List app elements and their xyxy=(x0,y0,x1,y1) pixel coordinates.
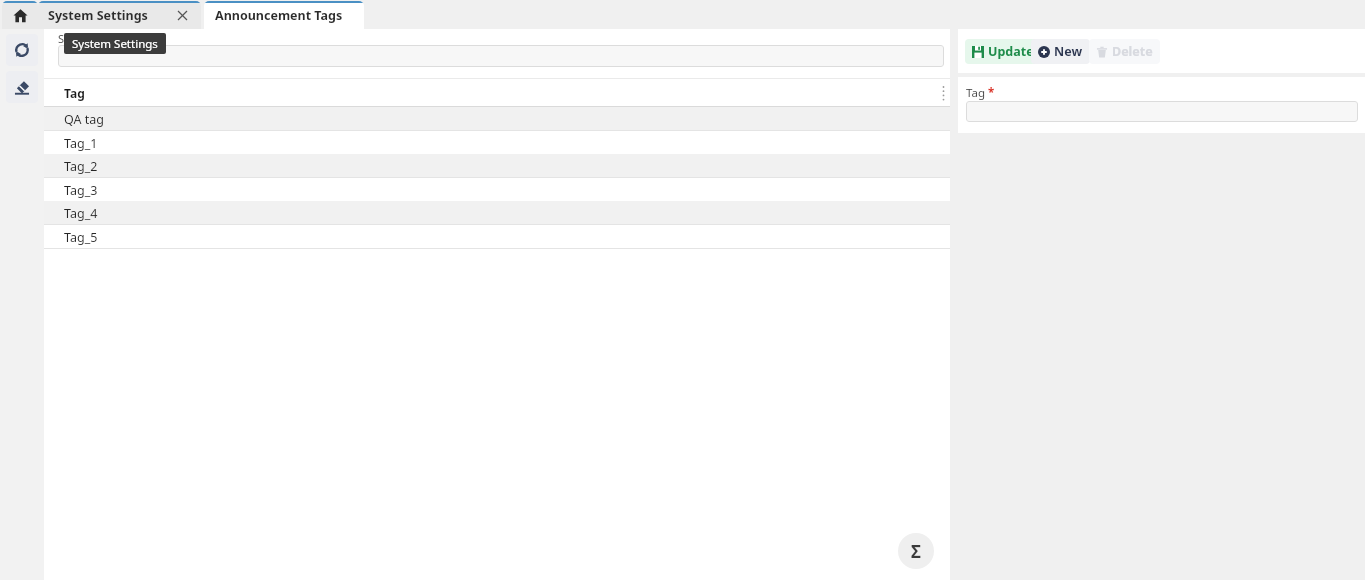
button[interactable]: Tag_4 xyxy=(44,201,950,225)
button[interactable]: System Settings xyxy=(38,1,201,29)
button[interactable]: Aggregate xyxy=(898,533,934,569)
button[interactable]: Announcement Tags xyxy=(204,1,364,29)
button[interactable]: Update xyxy=(965,39,1041,64)
button[interactable] xyxy=(966,101,1358,122)
staticText: * xyxy=(988,85,995,101)
staticText: Delete xyxy=(1112,43,1153,60)
button[interactable]: Close tab xyxy=(175,8,189,22)
staticText: Search xyxy=(58,31,93,46)
staticText: Announcement Tags xyxy=(215,7,343,24)
staticText: Tag_1 xyxy=(64,135,98,152)
button[interactable]: Refresh xyxy=(6,34,38,66)
staticText: New xyxy=(1054,43,1083,60)
staticText: Σ xyxy=(911,540,921,563)
staticText: Tag_2 xyxy=(64,158,98,175)
button[interactable]: Delete xyxy=(1089,39,1160,64)
staticText: System Settings xyxy=(72,36,158,52)
button[interactable]: Tag_5 xyxy=(44,225,950,249)
staticText: Update xyxy=(988,43,1034,60)
button[interactable]: QA tag xyxy=(44,107,950,131)
staticText: Tag xyxy=(966,85,985,101)
staticText: Tag_3 xyxy=(64,182,98,199)
staticText: Tag_5 xyxy=(64,229,98,246)
staticText: System Settings xyxy=(48,7,148,24)
staticText: Tag xyxy=(64,85,85,101)
button[interactable] xyxy=(58,45,944,67)
staticText: QA tag xyxy=(64,111,104,128)
button[interactable]: Tag_2 xyxy=(44,154,950,178)
staticText: Tag_4 xyxy=(64,205,98,222)
button[interactable]: Tag_3 xyxy=(44,178,950,202)
button[interactable]: Clear xyxy=(6,71,38,103)
button[interactable]: New xyxy=(1031,39,1090,64)
button[interactable]: Tag_1 xyxy=(44,131,950,155)
button[interactable]: Home xyxy=(2,1,38,29)
